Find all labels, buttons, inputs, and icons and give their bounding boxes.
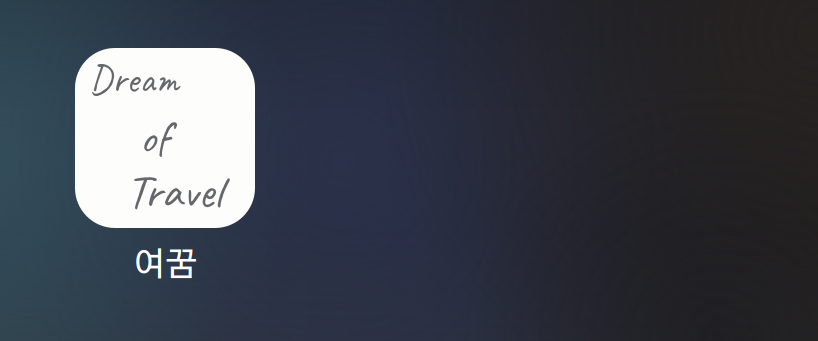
- staticText: Travel: [126, 161, 222, 221]
- staticText: of: [140, 110, 169, 165]
- staticText: 여꿈: [133, 249, 197, 282]
- button[interactable]: Dream: [75, 48, 255, 282]
- staticText: Dream: [89, 55, 179, 104]
